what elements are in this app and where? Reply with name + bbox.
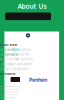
staticText: who care about the [3, 53, 30, 56]
staticText: , we design tools for [1, 48, 31, 51]
staticText: support the work that we do. [0, 97, 15, 99]
button[interactable]: About Us [8, 0, 55, 12]
staticText: choices simple, affordable and within [0, 62, 32, 66]
staticText: About Us [17, 2, 46, 11]
staticText: reach for every single household. [0, 67, 29, 70]
staticText: communities across the country every [0, 91, 19, 93]
staticText: everyday people [0, 53, 18, 56]
staticText: Our Partners [0, 72, 15, 76]
staticText: year. Get in touch to learn how you can [0, 94, 18, 96]
staticText: We partner with organisations that share [0, 85, 19, 87]
staticText: planet. Our mission is to make greener [0, 57, 33, 61]
staticText: Founded in 2014 [0, 48, 19, 51]
staticText: Meet Our Team [0, 43, 17, 47]
staticText: our values and help us reach many more [0, 88, 20, 90]
staticText: Penhen [29, 76, 47, 83]
